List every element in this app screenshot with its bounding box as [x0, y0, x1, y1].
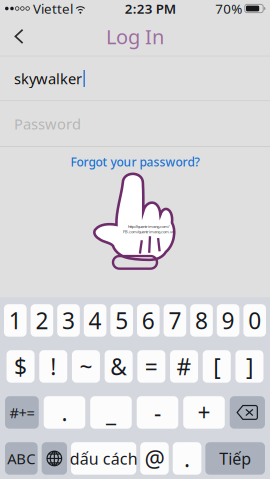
button[interactable]: . — [44, 396, 85, 429]
staticText: Tiếp — [219, 448, 251, 469]
button[interactable]: Next keyboard — [42, 442, 67, 475]
button[interactable]: Delete — [230, 396, 265, 429]
staticText: + — [197, 397, 210, 427]
staticText: @ — [144, 443, 164, 473]
button[interactable]: 5 — [110, 304, 133, 337]
button[interactable]: 2 — [31, 304, 53, 337]
button[interactable]: ABC — [5, 442, 38, 475]
staticText: ABC — [7, 449, 35, 468]
button[interactable]: ! — [39, 350, 67, 383]
staticText: ~ — [79, 351, 92, 381]
button[interactable]: 9 — [217, 304, 239, 337]
button[interactable]: Back — [0, 19, 34, 54]
button[interactable]: 3 — [57, 304, 80, 337]
button[interactable]: 7 — [164, 304, 186, 337]
staticText: & — [110, 351, 127, 381]
staticText: 8 — [195, 305, 208, 335]
staticText: 70% — [215, 0, 242, 17]
staticText: ! — [50, 351, 56, 381]
button[interactable]: 8 — [190, 304, 213, 337]
button[interactable]: = — [137, 350, 165, 383]
button[interactable]: dấu cách — [71, 442, 136, 475]
button[interactable]: . — [173, 442, 201, 475]
staticText: http://quantrimang.com/ — [128, 224, 169, 229]
staticText: 7 — [168, 305, 181, 335]
button[interactable]: [ — [203, 350, 231, 383]
staticText: $ — [14, 351, 27, 381]
staticText: Password — [14, 114, 81, 133]
button[interactable]: 4 — [84, 304, 106, 337]
button[interactable]: Forgot your password? — [60, 152, 209, 172]
staticText: _ — [106, 397, 116, 427]
staticText: 0 — [248, 305, 261, 335]
button[interactable]: # — [170, 350, 198, 383]
staticText: Forgot your password? — [70, 154, 199, 170]
staticText: 2 — [35, 305, 48, 335]
button[interactable]: Tiếp — [205, 442, 265, 475]
button[interactable]: & — [105, 350, 133, 383]
button[interactable]: 0 — [243, 304, 266, 337]
staticText: [ — [213, 351, 220, 381]
button[interactable]: #+= — [5, 396, 39, 429]
staticText: 4 — [89, 305, 102, 335]
staticText: ] — [246, 351, 253, 381]
staticText: 3 — [62, 305, 75, 335]
button[interactable]: 1 — [4, 304, 27, 337]
button[interactable]: + — [183, 396, 225, 429]
button[interactable]: ~ — [72, 350, 100, 383]
staticText: . — [61, 397, 67, 427]
staticText: dấu cách — [70, 448, 138, 469]
button[interactable]: 6 — [137, 304, 160, 337]
button[interactable]: - — [137, 396, 178, 429]
staticText: #+= — [9, 403, 34, 422]
staticText: = — [145, 351, 158, 381]
button[interactable]: @ — [140, 442, 169, 475]
staticText: skywalker — [14, 69, 82, 88]
staticText: # — [177, 351, 192, 381]
button[interactable]: $ — [7, 350, 35, 383]
button[interactable]: ] — [235, 350, 263, 383]
staticText: FB.com/quantrimang.com.vn — [123, 229, 174, 234]
staticText: Log In — [106, 23, 164, 50]
staticText: 6 — [142, 305, 155, 335]
staticText: 9 — [222, 305, 235, 335]
staticText: 1 — [9, 305, 22, 335]
staticText: . — [184, 443, 190, 473]
staticText: 5 — [115, 305, 128, 335]
staticText: 2:23 PM — [125, 0, 176, 17]
staticText: Viettel — [33, 0, 73, 17]
staticText: - — [154, 397, 161, 427]
button[interactable]: _ — [90, 396, 132, 429]
